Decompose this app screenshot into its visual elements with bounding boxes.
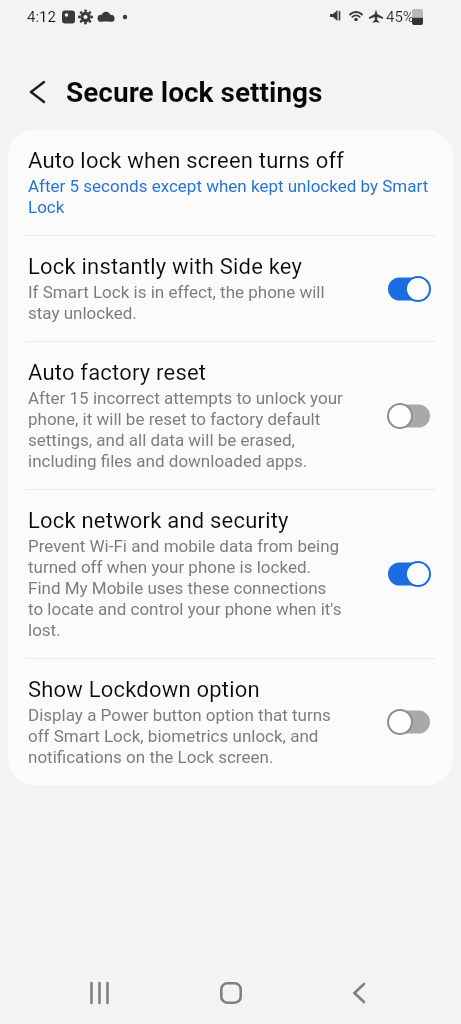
button[interactable]	[387, 276, 431, 302]
button[interactable]: Lock instantly with Side key	[8, 236, 453, 341]
staticText: After 5 seconds except when kept unlocke…	[28, 176, 429, 217]
staticText: Auto lock when screen turns off	[28, 148, 345, 174]
staticText: After 15 incorrect attempts to unlock yo…	[28, 388, 343, 471]
button[interactable]	[20, 74, 56, 110]
button[interactable]: Lock network and security	[8, 490, 453, 658]
button[interactable]	[335, 969, 383, 1017]
staticText: 45%	[386, 8, 414, 26]
staticText: Auto factory reset	[28, 360, 207, 386]
button[interactable]	[387, 561, 431, 587]
button[interactable]	[387, 403, 431, 429]
button[interactable]	[387, 709, 431, 735]
button[interactable]: Show Lockdown option	[8, 659, 453, 785]
staticText: Lock network and security	[28, 508, 289, 534]
button[interactable]: Auto lock when screen turns off	[8, 130, 453, 235]
staticText: Prevent Wi-Fi and mobile data from being…	[28, 536, 342, 640]
button[interactable]	[76, 969, 124, 1017]
staticText: Secure lock settings	[66, 76, 323, 109]
staticText: Lock instantly with Side key	[28, 254, 303, 280]
button[interactable]	[207, 969, 255, 1017]
staticText: If Smart Lock is in effect, the phone wi…	[28, 282, 325, 323]
staticText: 4:12	[27, 8, 56, 26]
button[interactable]: Auto factory reset	[8, 342, 453, 489]
staticText: Show Lockdown option	[28, 677, 260, 703]
staticText: Display a Power button option that turns…	[28, 705, 331, 767]
